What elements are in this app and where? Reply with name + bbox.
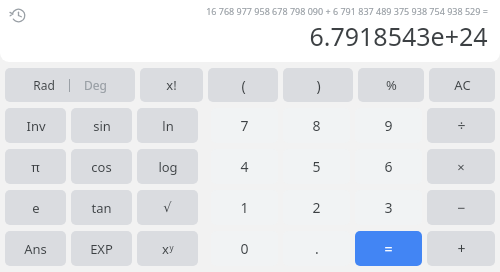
staticText: x bbox=[162, 240, 169, 258]
button[interactable]: − bbox=[427, 190, 495, 225]
staticText: tan bbox=[91, 199, 112, 217]
staticText: − bbox=[457, 198, 466, 217]
staticText: sin bbox=[93, 117, 111, 135]
button[interactable]: ÷ bbox=[427, 108, 495, 143]
button[interactable]: Ans bbox=[5, 231, 66, 266]
staticText: 6 bbox=[384, 157, 393, 176]
staticText: 5 bbox=[312, 157, 321, 176]
button[interactable]: ( bbox=[208, 68, 278, 102]
button[interactable]: e bbox=[5, 190, 66, 225]
button[interactable]: log bbox=[137, 149, 198, 184]
staticText: e bbox=[32, 199, 40, 217]
button[interactable]: x bbox=[137, 231, 198, 266]
staticText: AC bbox=[454, 76, 471, 94]
staticText: y bbox=[169, 242, 174, 253]
staticText: ÷ bbox=[457, 116, 466, 135]
button[interactable]: 7 bbox=[211, 108, 278, 143]
staticText: EXP bbox=[90, 240, 113, 258]
button[interactable]: . bbox=[283, 231, 350, 266]
staticText: 4 bbox=[240, 157, 249, 176]
staticText: 3 bbox=[384, 198, 393, 217]
button[interactable]: x! bbox=[140, 68, 203, 102]
staticText: Rad bbox=[33, 77, 55, 93]
staticText: ) bbox=[316, 76, 321, 95]
staticText: + bbox=[457, 239, 466, 258]
button[interactable]: 9 bbox=[355, 108, 422, 143]
button[interactable]: √ bbox=[137, 190, 198, 225]
button[interactable]: % bbox=[358, 68, 424, 102]
button[interactable]: Inv bbox=[5, 108, 66, 143]
staticText: 8 bbox=[312, 116, 321, 135]
staticText: % bbox=[386, 76, 397, 94]
button[interactable]: 4 bbox=[211, 149, 278, 184]
button[interactable]: 5 bbox=[283, 149, 350, 184]
staticText: = bbox=[384, 239, 393, 258]
button[interactable]: 3 bbox=[355, 190, 422, 225]
button[interactable]: 8 bbox=[283, 108, 350, 143]
button[interactable]: 2 bbox=[283, 190, 350, 225]
staticText: log bbox=[158, 158, 178, 176]
button[interactable]: π bbox=[5, 149, 66, 184]
button[interactable]: EXP bbox=[71, 231, 132, 266]
staticText: ( bbox=[241, 76, 246, 95]
staticText: π bbox=[31, 158, 40, 176]
staticText: 9 bbox=[384, 116, 393, 135]
staticText: . bbox=[315, 239, 319, 258]
button[interactable]: cos bbox=[71, 149, 132, 184]
staticText: √ bbox=[163, 200, 172, 215]
button[interactable]: ) bbox=[283, 68, 353, 102]
staticText: Inv bbox=[26, 117, 46, 135]
staticText: 1 bbox=[240, 198, 249, 217]
button[interactable]: History bbox=[5, 2, 31, 28]
staticText: × bbox=[457, 158, 465, 176]
button[interactable]: × bbox=[427, 149, 495, 184]
staticText: Deg bbox=[84, 77, 107, 93]
button[interactable]: + bbox=[427, 231, 495, 266]
staticText: 6.7918543e+24 bbox=[309, 19, 488, 53]
button[interactable]: AC bbox=[429, 68, 495, 102]
staticText: 0 bbox=[240, 239, 249, 258]
button[interactable]: 0 bbox=[211, 231, 278, 266]
staticText: 16 768 977 958 678 798 090 + 6 791 837 4… bbox=[206, 5, 488, 17]
staticText: 7 bbox=[240, 116, 249, 135]
button[interactable]: 6 bbox=[355, 149, 422, 184]
button[interactable]: Rad bbox=[5, 68, 135, 102]
button[interactable]: ln bbox=[137, 108, 198, 143]
staticText: ln bbox=[162, 117, 174, 135]
button[interactable]: = bbox=[355, 231, 422, 266]
button[interactable]: sin bbox=[71, 108, 132, 143]
staticText: 2 bbox=[312, 198, 321, 217]
button[interactable]: tan bbox=[71, 190, 132, 225]
staticText: Ans bbox=[24, 240, 47, 258]
button[interactable]: 1 bbox=[211, 190, 278, 225]
staticText: x! bbox=[166, 76, 177, 94]
staticText: cos bbox=[91, 158, 112, 176]
